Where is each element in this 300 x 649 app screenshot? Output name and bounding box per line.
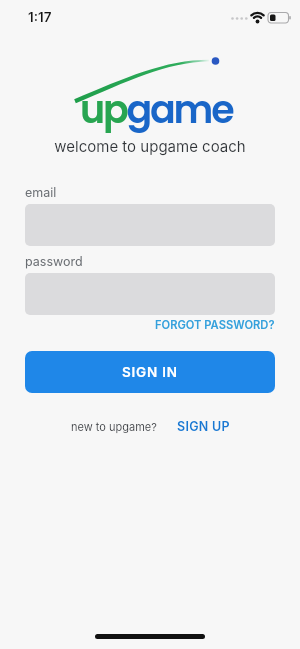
staticText: FORGOT PASSWORD? — [155, 318, 275, 332]
staticText: upgame — [80, 83, 233, 136]
button[interactable]: SIGN IN — [25, 351, 275, 393]
staticText: email — [25, 185, 57, 200]
staticText: 1:17 — [28, 9, 52, 25]
staticText: new to upgame? — [71, 420, 157, 433]
button[interactable]: FORGOT PASSWORD? — [155, 318, 275, 332]
staticText: password — [25, 254, 83, 269]
staticText: SIGN IN — [122, 364, 178, 380]
staticText: SIGN UP — [177, 419, 230, 434]
staticText: welcome to upgame coach — [0, 137, 300, 155]
button[interactable]: SIGN UP — [177, 419, 230, 434]
